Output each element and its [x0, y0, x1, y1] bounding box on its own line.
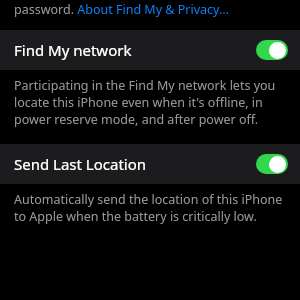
button[interactable]: Send Last Location	[256, 154, 288, 174]
staticText: Send Last Location	[14, 154, 147, 174]
button[interactable]: Find My network	[256, 40, 288, 60]
button[interactable]: password. About Find My & Privacy…	[14, 1, 229, 18]
staticText: Automatically send the location of this …	[14, 191, 286, 225]
button[interactable]: Find My network	[0, 30, 300, 70]
button[interactable]: Send Last Location	[0, 144, 300, 184]
staticText: Participating in the Find My network let…	[14, 77, 286, 128]
staticText: Find My network	[14, 40, 132, 60]
